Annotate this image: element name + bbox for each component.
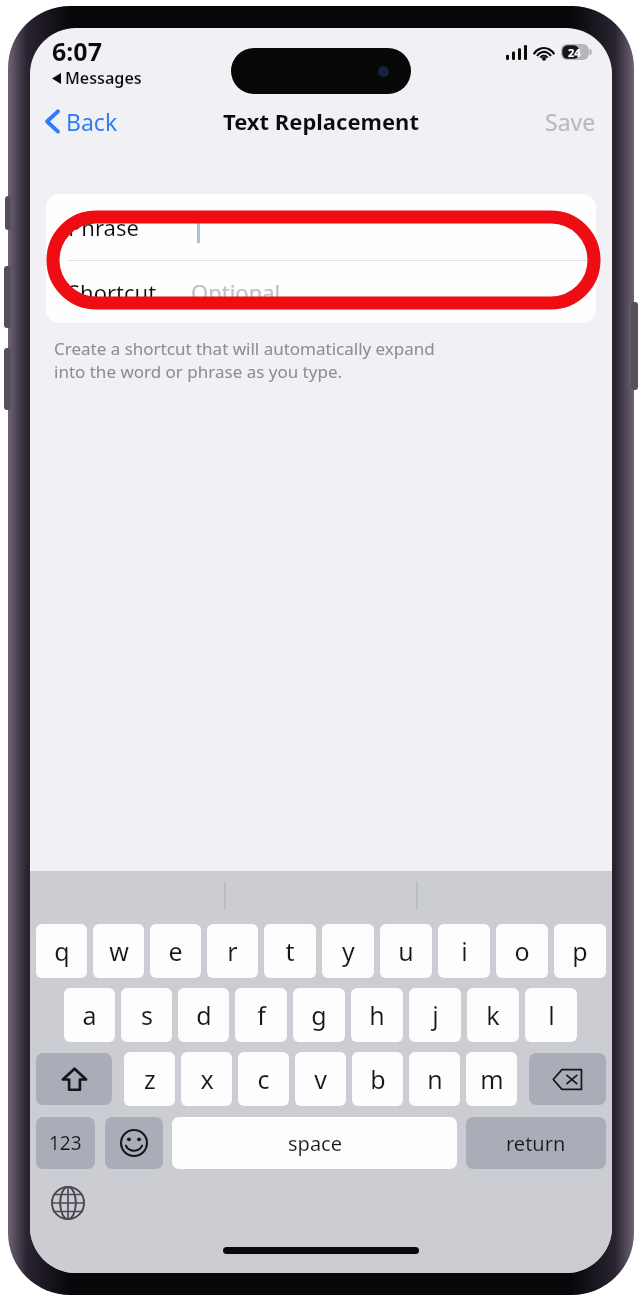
staticText: h [369, 998, 385, 1032]
button[interactable]: v [295, 1052, 346, 1106]
button[interactable]: Save [529, 100, 612, 143]
staticText: Optional [191, 277, 281, 307]
staticText: Messages [65, 67, 142, 89]
staticText: c [257, 1062, 270, 1096]
staticText: j [432, 998, 439, 1032]
button[interactable]: Phrase [46, 194, 596, 260]
staticText: f [257, 998, 266, 1032]
button[interactable]: h [351, 988, 403, 1042]
staticText: return [506, 1130, 566, 1157]
button[interactable]: Switch keyboard language [46, 1181, 90, 1225]
staticText: w [109, 934, 129, 968]
staticText: Back [66, 106, 118, 137]
staticText: Phrase [68, 212, 139, 242]
button[interactable]: Delete [529, 1053, 606, 1105]
button[interactable]: j [409, 988, 461, 1042]
button[interactable]: d [178, 988, 229, 1042]
button[interactable]: i [438, 924, 490, 978]
staticText: e [168, 934, 183, 968]
button[interactable]: o [496, 924, 548, 978]
staticText: r [227, 934, 238, 968]
staticText: d [196, 998, 212, 1032]
button[interactable]: e [150, 924, 201, 978]
staticText: Shortcut [68, 277, 157, 307]
button[interactable]: Back [30, 100, 128, 143]
staticText: Text Replacement [223, 106, 419, 136]
staticText: q [54, 934, 70, 968]
button[interactable]: y [322, 924, 374, 978]
button[interactable]: x [181, 1052, 232, 1106]
button[interactable]: a [64, 988, 115, 1042]
staticText: y [342, 934, 355, 968]
staticText: 6:07 [52, 34, 102, 68]
button[interactable]: z [124, 1052, 175, 1106]
button[interactable]: l [525, 988, 577, 1042]
button[interactable]: n [409, 1052, 460, 1106]
button[interactable]: u [380, 924, 432, 978]
button[interactable]: Emoji [105, 1117, 163, 1169]
staticText: v [314, 1062, 327, 1096]
button[interactable]: Shift [36, 1053, 112, 1105]
staticText: o [514, 934, 530, 968]
button[interactable]: r [207, 924, 258, 978]
staticText: t [285, 934, 295, 968]
button[interactable]: m [466, 1052, 517, 1106]
staticText: g [311, 998, 327, 1032]
staticText: a [82, 998, 97, 1032]
staticText: space [288, 1130, 342, 1157]
staticText: 123 [49, 1130, 82, 1156]
staticText: u [398, 934, 414, 968]
staticText: p [572, 934, 588, 968]
button[interactable]: q [36, 924, 87, 978]
button[interactable]: s [121, 988, 172, 1042]
button[interactable]: p [554, 924, 606, 978]
staticText: s [141, 998, 153, 1032]
staticText: Save [545, 106, 596, 137]
button[interactable]: t [264, 924, 316, 978]
staticText: m [480, 1062, 504, 1096]
staticText: i [461, 934, 468, 968]
button[interactable]: g [293, 988, 345, 1042]
button[interactable]: 123 [36, 1117, 95, 1169]
button[interactable]: return [466, 1117, 606, 1169]
staticText: n [427, 1062, 443, 1096]
staticText: k [486, 998, 500, 1032]
button[interactable]: f [235, 988, 287, 1042]
staticText: 24 [568, 45, 581, 60]
staticText: x [200, 1062, 214, 1096]
button[interactable]: Shortcut [46, 261, 596, 323]
button[interactable]: c [238, 1052, 289, 1106]
staticText: l [548, 998, 555, 1032]
button[interactable]: k [467, 988, 519, 1042]
staticText: z [144, 1062, 156, 1096]
button[interactable]: w [93, 924, 144, 978]
button[interactable]: space [172, 1117, 457, 1169]
button[interactable]: b [352, 1052, 403, 1106]
staticText: Create a shortcut that will automaticall… [54, 337, 435, 383]
staticText: b [370, 1062, 386, 1096]
